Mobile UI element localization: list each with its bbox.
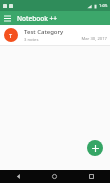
staticText: T — [9, 32, 13, 39]
button[interactable]: T — [0, 25, 110, 46]
staticText: Mar 30, 2017 — [81, 36, 107, 42]
staticText: 1:05 — [99, 3, 108, 9]
staticText: 3 notes — [24, 37, 39, 43]
button[interactable]: Open navigation drawer — [1, 12, 14, 25]
staticText: Notebook ++ — [17, 14, 57, 23]
button[interactable]: Recent apps — [73, 170, 110, 183]
button[interactable]: Add note — [87, 140, 103, 156]
button[interactable]: Home — [36, 170, 73, 183]
button[interactable]: Back — [0, 170, 36, 183]
staticText: Test Category — [24, 28, 64, 36]
